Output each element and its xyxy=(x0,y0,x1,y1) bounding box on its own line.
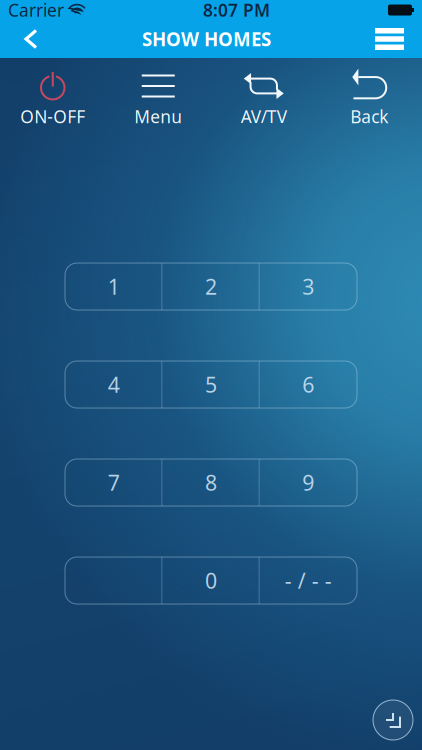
staticText: 7 xyxy=(108,468,120,497)
button[interactable]: 7 xyxy=(65,459,162,506)
button[interactable]: Menu xyxy=(105,64,211,136)
button[interactable]: 3 xyxy=(260,263,357,310)
button[interactable]: 1 xyxy=(65,263,162,310)
button[interactable]: Back xyxy=(6,21,50,56)
staticText: 8 xyxy=(205,468,217,497)
staticText: 3 xyxy=(302,272,314,301)
button[interactable]: 4 xyxy=(65,361,162,408)
button[interactable]: - / - - xyxy=(260,557,357,604)
staticText: 5 xyxy=(205,370,217,399)
staticText: 9 xyxy=(302,468,314,497)
button[interactable]: AV/TV xyxy=(211,64,316,136)
staticText: 0 xyxy=(205,566,217,595)
button[interactable]: 0 xyxy=(162,557,260,604)
button[interactable]: 8 xyxy=(162,459,260,506)
staticText: Menu xyxy=(134,105,182,128)
staticText: 1 xyxy=(108,272,120,301)
staticText: Back xyxy=(350,105,388,128)
staticText: - / - - xyxy=(285,566,332,595)
button[interactable]: Menu xyxy=(363,21,416,57)
button[interactable] xyxy=(65,557,162,604)
button[interactable]: 5 xyxy=(162,361,260,408)
staticText: 6 xyxy=(302,370,314,399)
button[interactable]: Back xyxy=(316,64,422,136)
button[interactable]: ON-OFF xyxy=(0,64,105,136)
button[interactable]: 6 xyxy=(260,361,357,408)
button[interactable]: 9 xyxy=(260,459,357,506)
staticText: 2 xyxy=(205,272,217,301)
staticText: 4 xyxy=(108,370,120,399)
button[interactable]: Collapse xyxy=(373,700,413,740)
button[interactable]: 2 xyxy=(162,263,260,310)
staticText: Carrier xyxy=(8,0,64,21)
staticText: 8:07 PM xyxy=(203,0,270,21)
staticText: ON-OFF xyxy=(20,105,85,128)
staticText: AV/TV xyxy=(241,105,287,128)
staticText: SHOW HOMES xyxy=(142,27,271,51)
